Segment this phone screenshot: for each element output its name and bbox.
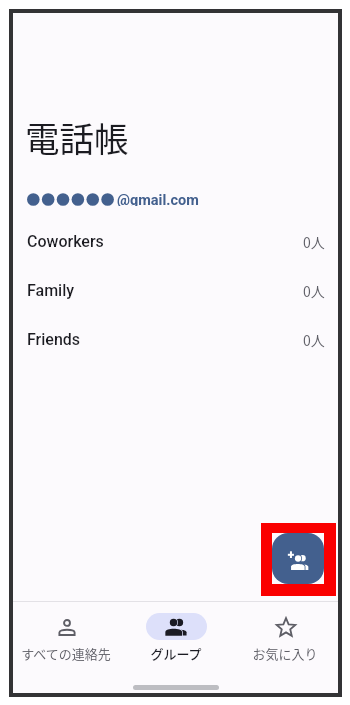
staticText: 電話帳 xyxy=(25,112,129,162)
button[interactable]: お気に入り xyxy=(233,602,337,663)
staticText: 0人 xyxy=(303,330,325,350)
staticText: すべての連絡先 xyxy=(21,644,111,663)
button[interactable]: Coworkers xyxy=(13,217,338,266)
staticText: Family xyxy=(27,281,75,300)
staticText: グループ xyxy=(150,644,202,663)
button[interactable]: Create new group xyxy=(272,533,324,584)
staticText: @gmail.com xyxy=(117,192,199,206)
button[interactable]: すべての連絡先 xyxy=(14,602,118,663)
staticText: Coworkers xyxy=(27,232,104,251)
button[interactable]: Family xyxy=(13,266,338,315)
staticText: お気に入り xyxy=(252,644,318,663)
staticText: 0人 xyxy=(303,232,325,252)
button[interactable]: Friends xyxy=(13,315,338,364)
staticText: 0人 xyxy=(303,281,325,301)
staticText: Friends xyxy=(27,330,81,349)
button[interactable]: グループ xyxy=(124,602,228,663)
